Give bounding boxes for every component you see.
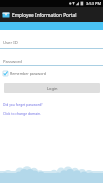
staticText: Remember password	[10, 71, 46, 76]
staticText: Login	[47, 86, 58, 91]
staticText: Password	[3, 59, 22, 65]
button[interactable]: Remember password	[0, 69, 103, 78]
staticText: 3:53 PM	[86, 1, 102, 6]
button[interactable]: Did you forget password?	[0, 100, 103, 108]
button[interactable]: Employee portal icon	[2, 11, 10, 19]
button[interactable]: Click to change domain.	[0, 109, 103, 117]
staticText: Click to change domain.	[3, 111, 42, 116]
button[interactable]: Login	[4, 83, 100, 93]
staticText: User ID	[3, 40, 18, 46]
staticText: Did you forget password?	[3, 102, 43, 106]
staticText: Employee Information Portal	[12, 12, 77, 18]
button[interactable]: User ID field	[0, 30, 103, 49]
button[interactable]: Password field	[0, 50, 103, 66]
